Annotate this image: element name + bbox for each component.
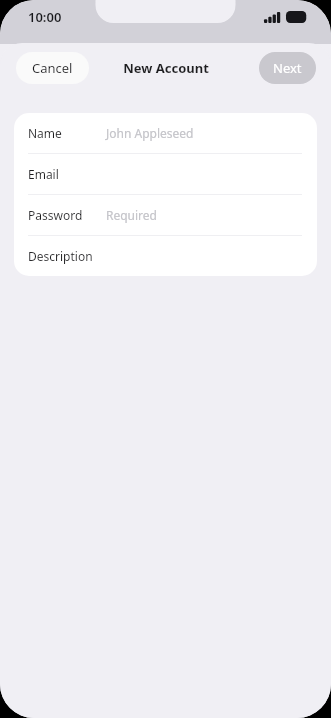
staticText: Next — [273, 59, 302, 77]
staticText: Required — [106, 207, 157, 223]
staticText: John Appleseed — [106, 125, 194, 141]
staticText: 10:00 — [28, 8, 62, 26]
button[interactable]: Cancel — [16, 52, 89, 84]
staticText: Name — [28, 125, 62, 141]
button[interactable]: Description — [14, 236, 317, 276]
staticText: New Account — [123, 59, 209, 77]
staticText: Email — [28, 166, 59, 182]
button[interactable]: Name — [14, 113, 317, 154]
staticText: Password — [28, 207, 83, 223]
button[interactable]: Email — [14, 154, 317, 195]
staticText: Description — [28, 248, 93, 264]
button[interactable]: Password — [14, 195, 317, 236]
staticText: Cancel — [32, 59, 73, 77]
button[interactable]: Next — [259, 52, 316, 84]
